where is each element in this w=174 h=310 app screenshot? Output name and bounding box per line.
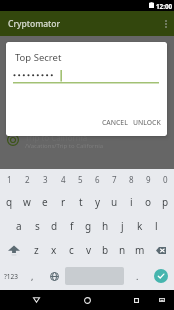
button[interactable]: More options xyxy=(155,11,174,36)
staticText: s xyxy=(35,219,40,233)
button[interactable]: 8 xyxy=(123,169,140,190)
button[interactable]: Enter xyxy=(148,262,174,290)
staticText: h xyxy=(102,219,109,233)
button[interactable]: n xyxy=(114,238,131,262)
button[interactable]: c xyxy=(63,238,80,262)
button[interactable]: d xyxy=(46,214,63,238)
button[interactable]: x xyxy=(45,238,63,262)
button[interactable]: ?123 xyxy=(0,262,21,290)
button[interactable]: v xyxy=(80,238,97,262)
staticText: i xyxy=(130,195,133,209)
button[interactable]: 1 xyxy=(0,169,18,190)
staticText: g xyxy=(85,219,92,233)
button[interactable]: CANCEL xyxy=(100,115,130,130)
button[interactable]: o xyxy=(140,190,157,214)
button[interactable]: z xyxy=(27,238,45,262)
button[interactable]: Backspace xyxy=(148,238,174,262)
staticText: q xyxy=(6,195,13,209)
button[interactable]: Switch keyboard xyxy=(152,290,172,310)
button[interactable]: f xyxy=(63,214,80,238)
staticText: 0 xyxy=(163,174,168,185)
button[interactable]: 4 xyxy=(54,169,72,190)
button[interactable]: r xyxy=(54,190,72,214)
staticText: 9 xyxy=(146,174,151,185)
button[interactable]: Language xyxy=(43,262,65,290)
staticText: o xyxy=(145,195,152,209)
staticText: 2 xyxy=(25,174,30,185)
staticText: j xyxy=(121,219,124,233)
button[interactable]: 7 xyxy=(106,169,123,190)
button[interactable]: UNLOCK xyxy=(131,115,163,130)
button[interactable]: 0 xyxy=(157,169,174,190)
staticText: 3 xyxy=(43,174,48,185)
staticText: n xyxy=(119,243,126,257)
button[interactable]: q xyxy=(0,190,18,214)
staticText: u xyxy=(111,195,118,209)
staticText: Top Secret xyxy=(15,51,62,64)
button[interactable]: k xyxy=(131,214,148,238)
button[interactable]: j xyxy=(114,214,131,238)
staticText: y xyxy=(95,195,101,209)
staticText: Trip to California xyxy=(25,132,88,143)
button[interactable]: 6 xyxy=(89,169,106,190)
button[interactable]: y xyxy=(89,190,106,214)
staticText: , xyxy=(31,270,34,282)
staticText: l xyxy=(155,219,158,233)
staticText: b xyxy=(102,243,109,257)
button[interactable]: b xyxy=(97,238,114,262)
button[interactable]: Recents xyxy=(124,290,148,310)
button[interactable]: g xyxy=(80,214,97,238)
staticText: 5 xyxy=(78,174,83,185)
staticText: ?123 xyxy=(4,272,18,281)
staticText: m xyxy=(135,243,145,257)
button[interactable]: , xyxy=(21,262,43,290)
staticText: UNLOCK xyxy=(133,118,161,127)
staticText: k xyxy=(137,219,143,233)
button[interactable]: Home xyxy=(75,290,99,310)
staticText: f xyxy=(70,219,74,233)
staticText: CANCEL xyxy=(102,118,128,127)
staticText: e xyxy=(42,195,48,209)
button[interactable]: . xyxy=(126,262,148,290)
staticText: d xyxy=(51,219,58,233)
button[interactable]: h xyxy=(97,214,114,238)
staticText: w xyxy=(23,195,31,209)
button[interactable]: Back xyxy=(24,290,48,310)
staticText: 4 xyxy=(61,174,66,185)
staticText: 7 xyxy=(112,174,117,185)
staticText: t xyxy=(79,195,83,209)
button[interactable]: w xyxy=(18,190,36,214)
staticText: . xyxy=(136,270,139,282)
staticText: 1 xyxy=(7,174,12,185)
button[interactable]: s xyxy=(28,214,46,238)
staticText: v xyxy=(86,243,92,257)
staticText: /Vacations/Trip to California xyxy=(25,142,104,150)
staticText: 8 xyxy=(129,174,134,185)
staticText: z xyxy=(34,243,39,257)
button[interactable]: Shift xyxy=(0,238,27,262)
button[interactable]: l xyxy=(148,214,165,238)
staticText: p xyxy=(162,195,169,209)
button[interactable]: a xyxy=(10,214,28,238)
staticText: 6 xyxy=(95,174,100,185)
button[interactable]: t xyxy=(72,190,89,214)
staticText: x xyxy=(51,243,57,257)
button[interactable]: 2 xyxy=(18,169,36,190)
staticText: c xyxy=(69,243,74,257)
staticText: a xyxy=(16,219,22,233)
button[interactable]: p xyxy=(157,190,174,214)
button[interactable]: m xyxy=(131,238,148,262)
button[interactable]: 5 xyxy=(72,169,89,190)
staticText: Cryptomator xyxy=(8,18,61,30)
button[interactable]: u xyxy=(106,190,123,214)
button[interactable]: 9 xyxy=(140,169,157,190)
staticText: 12:00 xyxy=(156,2,173,11)
button[interactable]: e xyxy=(36,190,54,214)
button[interactable]: i xyxy=(123,190,140,214)
button[interactable]: 3 xyxy=(36,169,54,190)
staticText: r xyxy=(61,195,66,209)
